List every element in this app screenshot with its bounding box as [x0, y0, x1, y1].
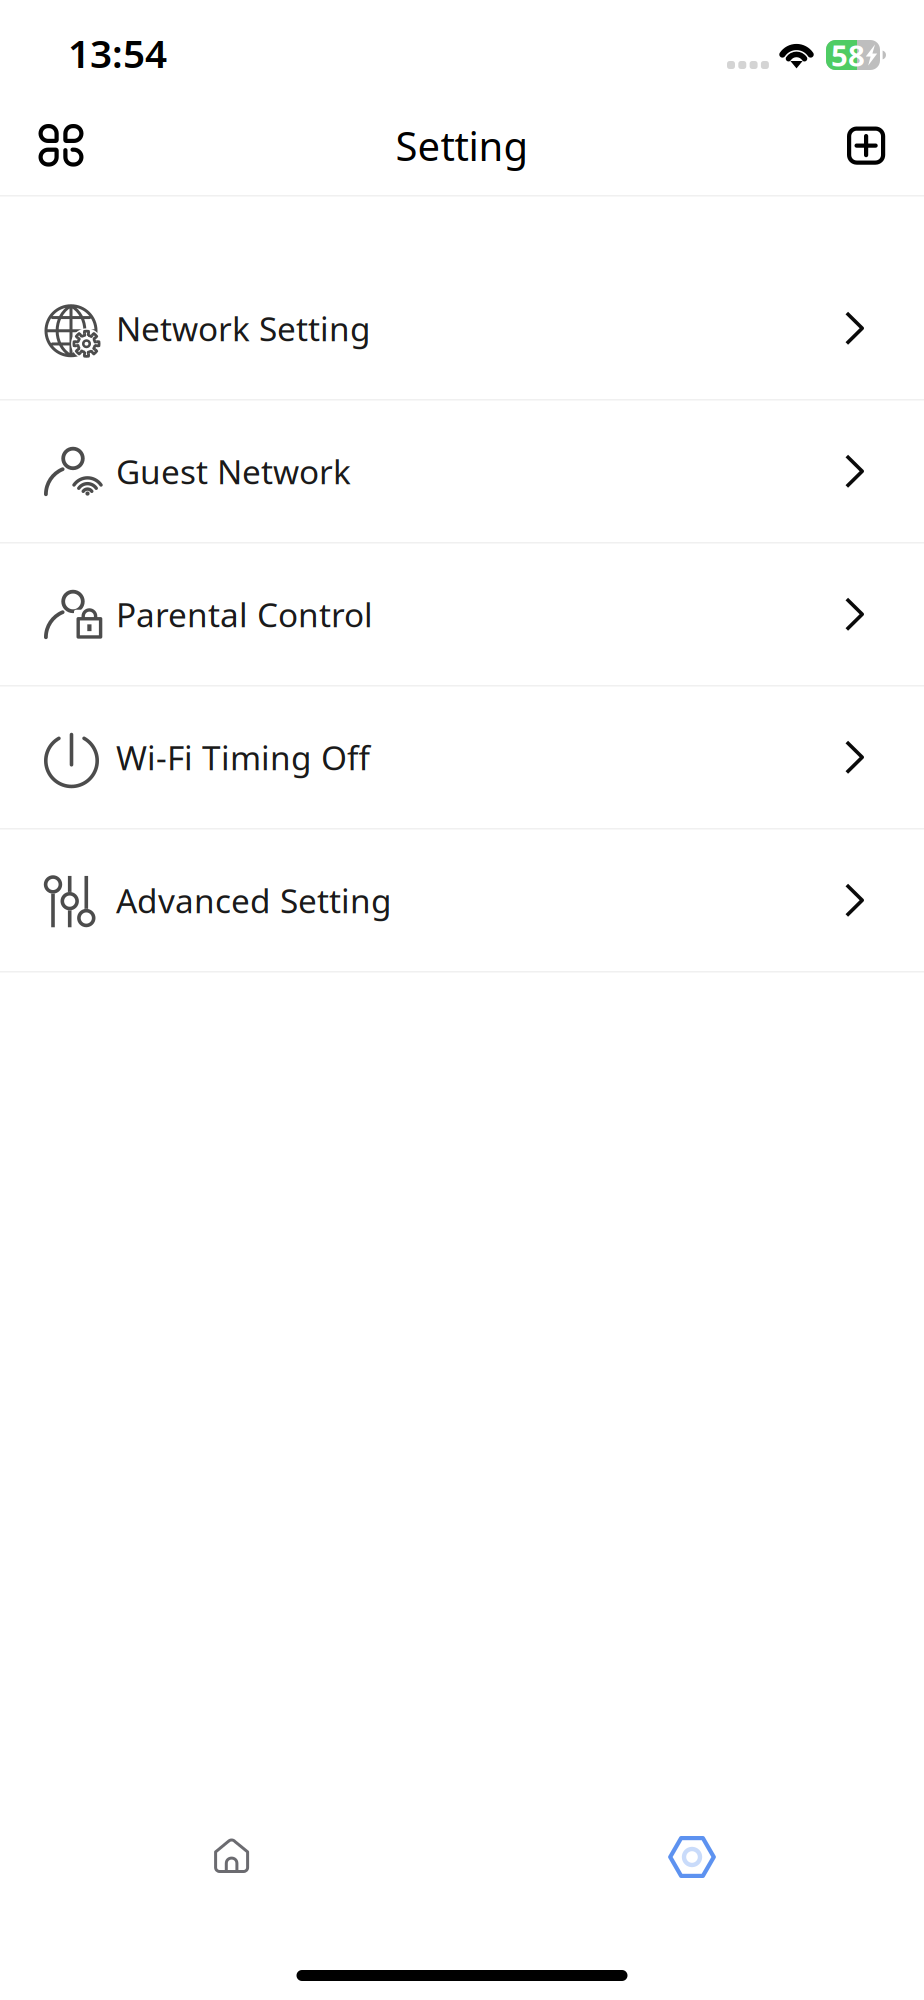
staticText: 13:54	[68, 27, 167, 79]
button[interactable]: Home	[168, 1821, 296, 1893]
staticText: Advanced Setting	[116, 878, 392, 922]
staticText: Network Setting	[116, 306, 371, 350]
staticText: Setting	[395, 119, 528, 172]
button[interactable]: Advanced Setting	[0, 829, 924, 972]
staticText: Parental Control	[116, 592, 373, 636]
button[interactable]: Wi-Fi Timing Off	[0, 686, 924, 829]
button[interactable]: Settings	[628, 1821, 756, 1893]
button[interactable]: Guest Network	[0, 400, 924, 543]
button[interactable]: Add	[826, 105, 906, 185]
button[interactable]: Devices	[21, 105, 101, 185]
staticText: 58	[831, 35, 865, 74]
staticText: Wi-Fi Timing Off	[116, 735, 370, 779]
staticText: Guest Network	[116, 449, 351, 493]
button[interactable]: Parental Control	[0, 543, 924, 686]
button[interactable]: Network Setting	[0, 257, 924, 400]
